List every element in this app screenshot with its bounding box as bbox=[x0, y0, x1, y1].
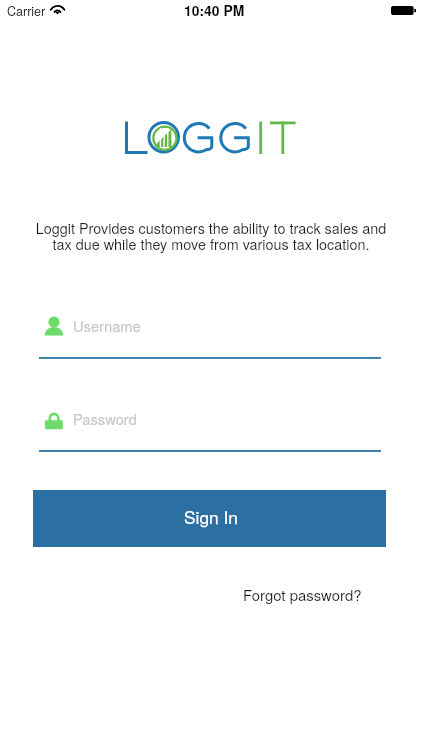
staticText: Username bbox=[73, 315, 141, 336]
other: Password bbox=[44, 410, 64, 430]
staticText: Forgot password? bbox=[243, 584, 362, 605]
staticText: 10:40 PM bbox=[184, 0, 245, 20]
staticText: Loggit Provides customers the ability to… bbox=[30, 217, 392, 254]
button[interactable]: Sign In bbox=[33, 490, 386, 547]
button[interactable]: Password bbox=[33, 406, 386, 458]
staticText: Carrier bbox=[7, 2, 46, 20]
button[interactable]: Username bbox=[33, 313, 386, 365]
other: Username bbox=[44, 317, 64, 337]
button[interactable]: Forgot password? bbox=[237, 580, 368, 608]
staticText: Password bbox=[73, 408, 137, 429]
staticText: Sign In bbox=[184, 504, 238, 529]
